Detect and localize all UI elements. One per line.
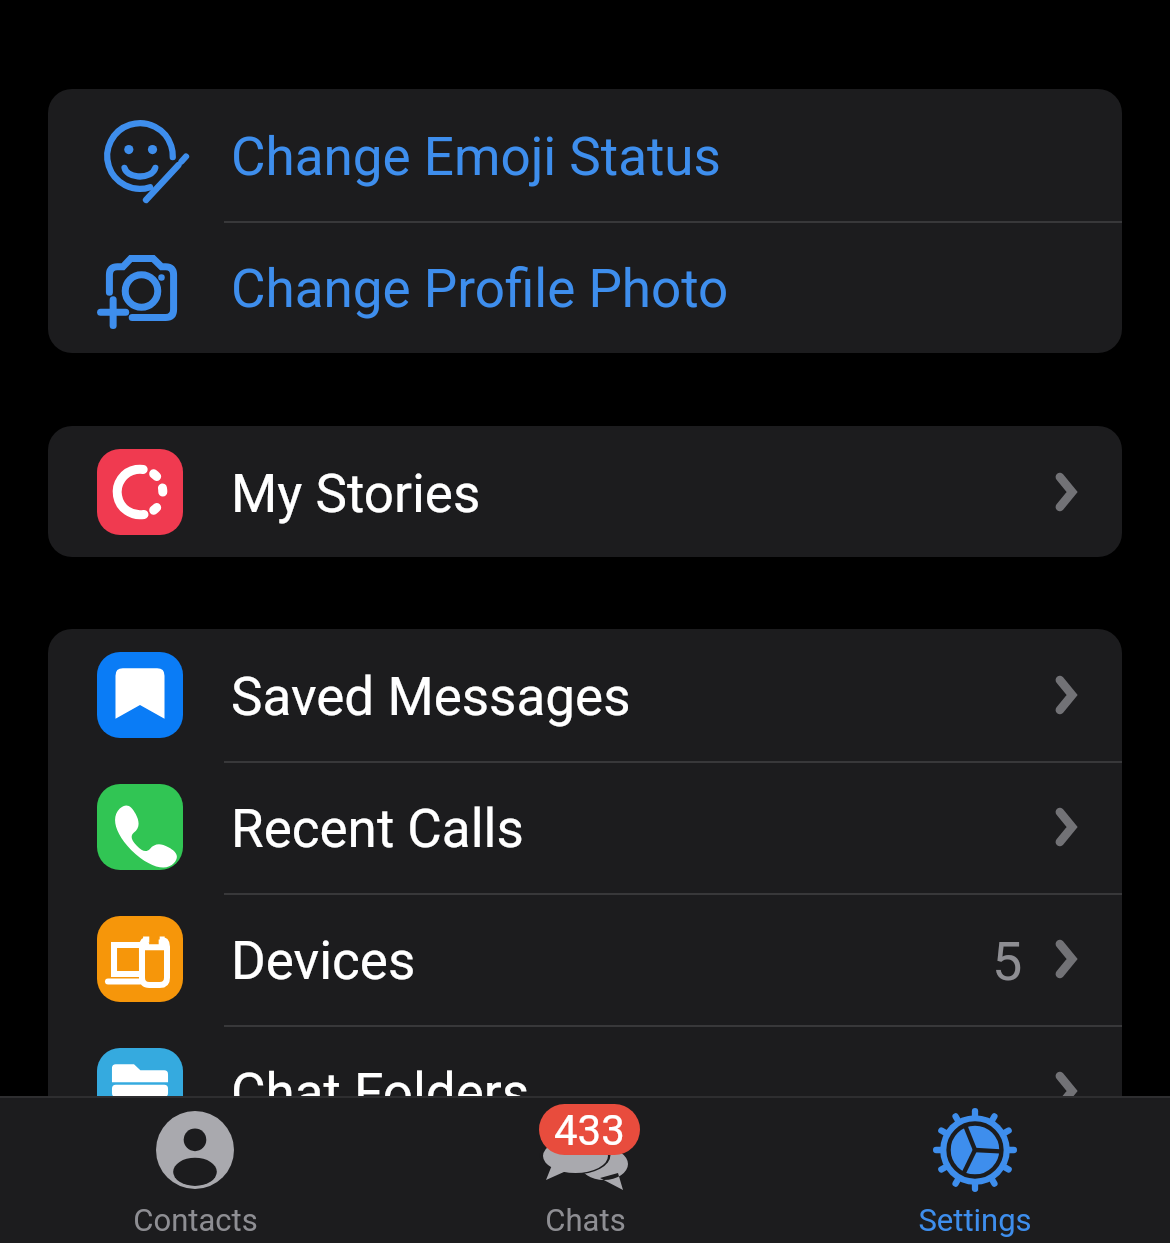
button[interactable]: Change Emoji Status bbox=[48, 89, 1122, 221]
staticText: My Stories bbox=[231, 463, 481, 525]
button[interactable]: Change Profile Photo bbox=[48, 221, 1122, 353]
button[interactable]: Chat Folders bbox=[48, 1025, 1122, 1157]
staticText: Recent Calls bbox=[231, 798, 524, 860]
staticText: Contacts bbox=[133, 1202, 258, 1238]
staticText: 5 bbox=[992, 930, 1023, 993]
button[interactable]: 433 bbox=[390, 1098, 780, 1243]
button[interactable]: Settings bbox=[780, 1098, 1170, 1243]
staticText: Chats bbox=[545, 1202, 626, 1238]
staticText: Saved Messages bbox=[231, 666, 631, 728]
staticText: Chat Folders bbox=[231, 1062, 530, 1124]
button[interactable]: Saved Messages bbox=[48, 629, 1122, 761]
staticText: Change Profile Photo bbox=[231, 258, 729, 320]
staticText: 433 bbox=[554, 1106, 625, 1155]
button[interactable]: My Stories bbox=[48, 426, 1122, 557]
button[interactable]: Contacts bbox=[0, 1098, 390, 1243]
other: Settings bbox=[933, 1108, 1017, 1192]
staticText: Change Emoji Status bbox=[231, 126, 721, 188]
staticText: Settings bbox=[918, 1202, 1032, 1238]
button[interactable]: Recent Calls bbox=[48, 761, 1122, 893]
button[interactable]: Devices bbox=[48, 893, 1122, 1025]
staticText: Devices bbox=[231, 930, 416, 992]
